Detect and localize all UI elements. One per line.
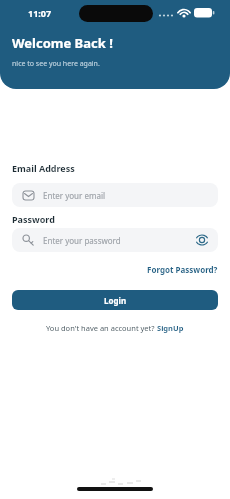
staticText: Email Address (12, 162, 75, 174)
button[interactable]: Forgot Password? (147, 264, 218, 275)
staticText: Enter your password (43, 235, 121, 246)
staticText: You don't have an account yet? (46, 323, 157, 333)
button[interactable]: Enter your email (12, 183, 218, 207)
staticText: Forgot Password? (147, 264, 218, 275)
button[interactable]: SignUp (157, 323, 184, 333)
staticText: SignUp (157, 323, 184, 333)
staticText: Password (12, 213, 55, 225)
staticText: Welcome Back ! (12, 34, 113, 52)
button[interactable]: Enter your password (12, 228, 218, 252)
staticText: 11:07 (28, 7, 52, 19)
staticText: Login (104, 295, 127, 306)
button[interactable] (194, 232, 210, 248)
button[interactable]: Login (12, 290, 218, 310)
staticText: nice to see you here again. (12, 59, 100, 69)
staticText: Enter your email (43, 190, 106, 201)
